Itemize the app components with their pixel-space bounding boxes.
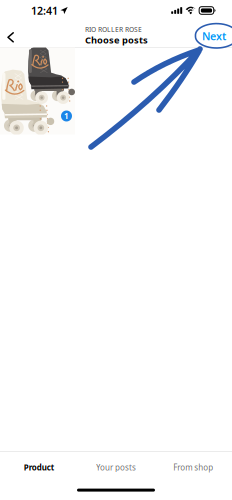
staticText: Product	[24, 462, 54, 473]
button[interactable]: Product	[0, 452, 77, 481]
staticText: 12:41	[31, 3, 58, 18]
staticText: Choose posts	[85, 34, 148, 46]
staticText: 1	[64, 111, 69, 121]
button[interactable]: Rio Roller Rose skates, selected 1	[0, 47, 75, 134]
staticText: Your posts	[96, 462, 136, 473]
button[interactable]: Back	[2, 25, 19, 50]
staticText: From shop	[173, 462, 213, 473]
staticText: Next	[202, 29, 226, 43]
button[interactable]: Next	[196, 23, 232, 49]
staticText: RIO ROLLER ROSE	[85, 25, 142, 34]
button[interactable]: From shop	[155, 452, 232, 481]
button[interactable]: Your posts	[77, 452, 155, 481]
